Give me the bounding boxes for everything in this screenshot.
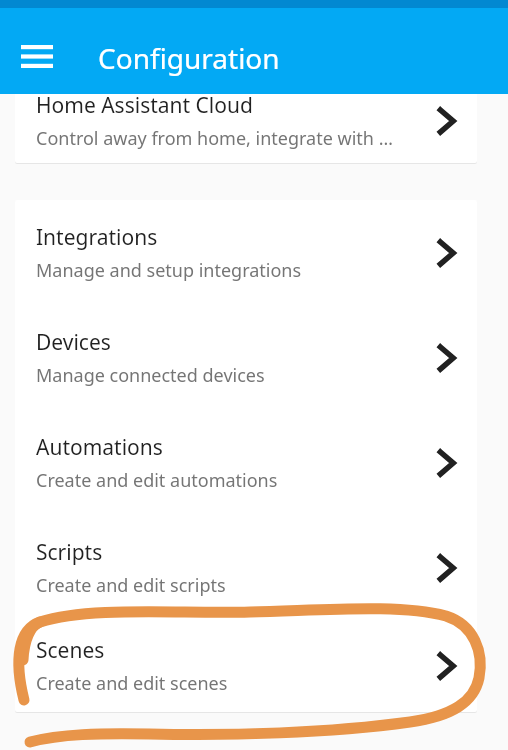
button[interactable]: Scenes — [15, 620, 477, 712]
staticText: Configuration — [98, 39, 280, 77]
staticText: Create and edit scripts — [36, 573, 226, 598]
staticText: Integrations — [36, 223, 158, 252]
staticText: Home Assistant Cloud — [36, 91, 253, 120]
staticText: Automations — [36, 433, 163, 462]
staticText: Create and edit automations — [36, 468, 278, 493]
button[interactable]: Scripts — [15, 515, 477, 620]
button[interactable]: Automations — [15, 410, 477, 515]
button[interactable]: Devices — [15, 305, 477, 410]
staticText: Manage and setup integrations — [36, 258, 302, 283]
staticText: Control away from home, integrate with … — [36, 126, 393, 151]
staticText: Manage connected devices — [36, 363, 265, 388]
button[interactable]: Integrations — [15, 200, 477, 305]
button[interactable]: Home Assistant Cloud — [15, 78, 477, 163]
staticText: Scripts — [36, 538, 103, 567]
staticText: Scenes — [36, 636, 105, 665]
staticText: Devices — [36, 328, 111, 357]
button[interactable]: Open navigation menu — [8, 27, 66, 85]
staticText: Create and edit scenes — [36, 671, 228, 696]
